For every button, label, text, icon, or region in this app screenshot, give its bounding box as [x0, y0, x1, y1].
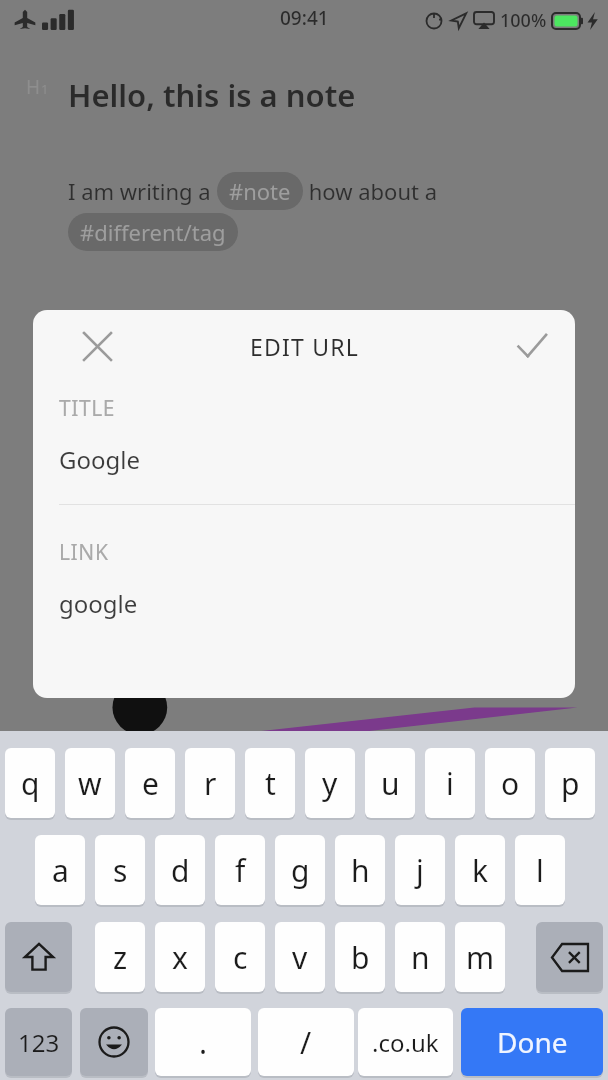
staticText: Google [59, 443, 140, 476]
staticText: #different/tag [80, 217, 226, 247]
staticText: o [501, 763, 520, 804]
button[interactable]: TITLE [59, 394, 549, 476]
staticText: TITLE [59, 394, 116, 423]
staticText: w [78, 763, 102, 804]
button[interactable]: Backspace [536, 922, 603, 992]
staticText: c [233, 937, 248, 978]
staticText: n [411, 937, 430, 978]
button[interactable]: Done [461, 1008, 603, 1076]
staticText: k [472, 850, 489, 891]
button[interactable]: x [155, 922, 205, 992]
button[interactable]: o [485, 748, 535, 818]
staticText: v [292, 937, 308, 978]
staticText: s [113, 850, 128, 891]
staticText: g [291, 850, 310, 891]
staticText: Done [497, 1023, 568, 1061]
button[interactable]: y [305, 748, 355, 818]
button[interactable]: l [515, 835, 565, 905]
staticText: b [351, 937, 370, 978]
staticText: l [536, 850, 544, 891]
staticText: 09:41 [280, 5, 329, 31]
button[interactable]: f [215, 835, 265, 905]
staticText: H [26, 74, 41, 100]
staticText: #note [229, 176, 291, 206]
button[interactable]: b [335, 922, 385, 992]
staticText: I am writing a [68, 176, 217, 206]
button[interactable]: j [395, 835, 445, 905]
button[interactable]: e [125, 748, 175, 818]
staticText: u [381, 763, 400, 804]
staticText: Hello, this is a note [68, 74, 356, 116]
button[interactable]: Confirm [507, 321, 557, 371]
staticText: f [235, 850, 246, 891]
button[interactable]: w [65, 748, 115, 818]
button[interactable]: t [245, 748, 295, 818]
button[interactable]: Shift [5, 922, 72, 992]
staticText: 123 [18, 1026, 60, 1059]
button[interactable]: / [258, 1008, 354, 1076]
button[interactable]: LINK [59, 538, 549, 620]
button[interactable]: c [215, 922, 265, 992]
button[interactable]: r [185, 748, 235, 818]
button[interactable]: u [365, 748, 415, 818]
staticText: . [199, 1022, 208, 1063]
staticText: r [204, 763, 217, 804]
button[interactable]: Close [74, 323, 120, 369]
staticText: t [265, 763, 276, 804]
staticText: LINK [59, 538, 109, 567]
staticText: z [113, 937, 128, 978]
staticText: h [351, 850, 370, 891]
button[interactable]: v [275, 922, 325, 992]
button[interactable]: . [155, 1008, 251, 1076]
staticText: x [172, 937, 188, 978]
button[interactable]: 123 [5, 1008, 72, 1076]
staticText: / [300, 1022, 312, 1063]
staticText: e [142, 763, 159, 804]
staticText: p [561, 763, 580, 804]
button[interactable]: m [455, 922, 505, 992]
button[interactable]: n [395, 922, 445, 992]
staticText: i [446, 763, 454, 804]
button[interactable]: a [35, 835, 85, 905]
button[interactable]: z [95, 922, 145, 992]
staticText: 100% [500, 8, 547, 33]
button[interactable]: i [425, 748, 475, 818]
staticText: y [322, 763, 338, 804]
staticText: d [171, 850, 190, 891]
button[interactable]: g [275, 835, 325, 905]
button[interactable]: k [455, 835, 505, 905]
button[interactable]: Emoji [80, 1008, 148, 1076]
staticText: m [466, 937, 495, 978]
button[interactable]: d [155, 835, 205, 905]
staticText: q [21, 763, 40, 804]
button[interactable]: q [5, 748, 55, 818]
staticText: .co.uk [372, 1026, 439, 1059]
staticText: a [52, 850, 69, 891]
staticText: how about a [303, 176, 437, 206]
staticText: google [59, 587, 138, 620]
button[interactable]: s [95, 835, 145, 905]
button[interactable]: p [545, 748, 595, 818]
staticText: j [416, 850, 424, 891]
staticText: 1 [41, 80, 49, 98]
staticText: EDIT URL [250, 331, 359, 362]
button[interactable]: .co.uk [358, 1008, 453, 1076]
button[interactable]: h [335, 835, 385, 905]
